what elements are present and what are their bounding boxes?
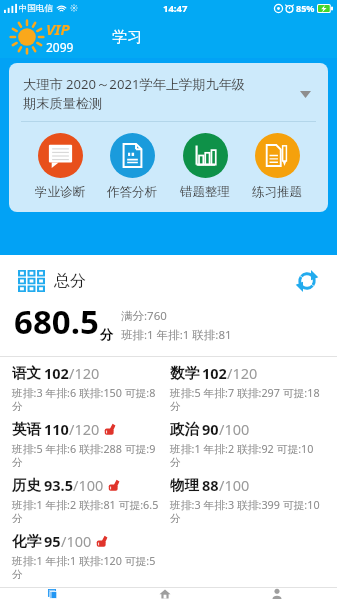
staticText: 85% (296, 2, 315, 14)
staticText: 总分 (54, 271, 86, 291)
button[interactable]: Select exam (292, 81, 318, 107)
staticText: 作答分析 (107, 184, 157, 200)
button[interactable]: 数学 (170, 363, 329, 419)
staticText: 110 (44, 419, 69, 439)
staticText: /120 (69, 363, 100, 383)
staticText: 88 (202, 475, 219, 495)
staticText: VIP (46, 19, 70, 39)
staticText: 102 (44, 363, 69, 383)
staticText: 班排:1 年排:2 联排:81 可提:6.5 分 (12, 497, 164, 526)
button[interactable]: 英语 (12, 419, 170, 475)
staticText: 错题整理 (180, 184, 230, 200)
staticText: 练习推题 (252, 184, 302, 200)
button[interactable]: 化学 (12, 531, 170, 587)
button[interactable]: 我 (225, 588, 337, 600)
staticText: 班排:1 年排:1 联排:120 可提:5 分 (12, 553, 164, 582)
staticText: 班排:5 年排:6 联排:288 可提:9 分 (12, 441, 164, 470)
staticText: 班排:1 年排:1 联排:81 (121, 327, 232, 343)
staticText: /100 (219, 419, 250, 439)
staticText: 学业诊断 (35, 184, 85, 200)
staticText: 90 (202, 419, 219, 439)
staticText: 93.5 (44, 475, 73, 495)
button[interactable]: 错题整理 (178, 133, 232, 200)
staticText: 历史 (12, 476, 41, 494)
staticText: 学习 (112, 28, 142, 47)
staticText: 英语 (12, 420, 41, 438)
staticText: /100 (61, 531, 92, 551)
staticText: 政治 (170, 420, 199, 438)
button[interactable]: 学习 (0, 588, 113, 600)
staticText: /120 (227, 363, 258, 383)
staticText: 大理市 2020～2021学年上学期九年级 期末质量检测 (23, 75, 246, 112)
staticText: /100 (73, 475, 104, 495)
button[interactable]: 历史 (12, 475, 170, 531)
staticText: 14:47 (163, 2, 188, 15)
staticText: 95 (44, 531, 61, 551)
staticText: 分 (100, 326, 113, 342)
staticText: /100 (219, 475, 250, 495)
button[interactable]: 语文 (12, 363, 170, 419)
staticText: 班排:3 年排:6 联排:150 可提:8 分 (12, 385, 164, 414)
staticText: 班排:1 年排:2 联排:92 可提:10 分 (170, 441, 323, 470)
button[interactable]: 作答分析 (105, 133, 159, 200)
button[interactable]: 学业诊断 (33, 133, 87, 200)
staticText: 2099 (46, 39, 74, 55)
staticText: 语文 (12, 364, 41, 382)
staticText: 数学 (170, 364, 199, 382)
staticText: 化学 (12, 532, 41, 550)
button[interactable]: 首页 (113, 588, 225, 600)
button[interactable]: 物理 (170, 475, 329, 531)
staticText: 中国电信 (19, 3, 53, 14)
button[interactable]: 政治 (170, 419, 329, 475)
staticText: 102 (202, 363, 227, 383)
staticText: 班排:5 年排:7 联排:297 可提:18 分 (170, 385, 323, 414)
staticText: 班排:3 年排:3 联排:399 可提:10 分 (170, 497, 323, 526)
staticText: 680.5 (14, 299, 99, 344)
staticText: 满分:760 (121, 308, 167, 324)
staticText: /120 (69, 419, 100, 439)
staticText: 物理 (170, 476, 199, 494)
button[interactable]: 练习推题 (250, 133, 304, 200)
button[interactable]: Refresh (293, 267, 321, 295)
